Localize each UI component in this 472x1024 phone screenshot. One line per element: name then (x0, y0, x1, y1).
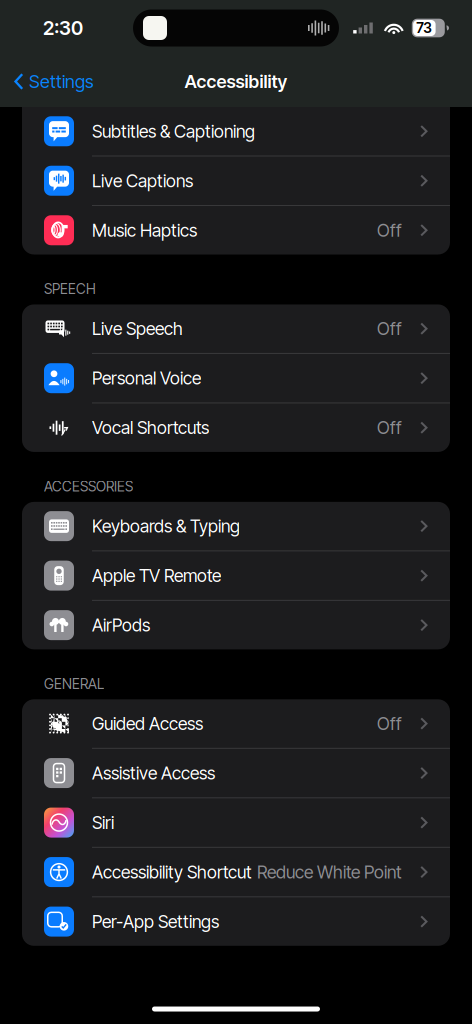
button[interactable]: Subtitles & Captioning (22, 107, 450, 155)
staticText: Music Haptics (92, 220, 197, 241)
staticText: Live Speech (92, 318, 183, 339)
staticText: 2:30 (43, 16, 83, 40)
button[interactable]: Apple TV Remote (22, 551, 450, 600)
button[interactable]: Live Speech (22, 304, 450, 353)
button[interactable]: Assistive Access (22, 749, 450, 797)
staticText: Settings (29, 71, 94, 92)
staticText: Siri (92, 812, 114, 833)
staticText: Assistive Access (92, 762, 215, 784)
staticText: Off (377, 318, 402, 339)
staticText: AirPods (92, 614, 150, 636)
staticText: Vocal Shortcuts (92, 417, 209, 438)
staticText: Personal Voice (92, 367, 201, 389)
button[interactable]: Siri (22, 798, 450, 847)
staticText: Per-App Settings (92, 911, 219, 932)
staticText: Off (377, 417, 402, 438)
staticText: Accessibility Shortcut (92, 861, 252, 883)
staticText: Apple TV Remote (92, 565, 221, 586)
staticText: Guided Access (92, 713, 203, 734)
button[interactable]: Personal Voice (22, 354, 450, 402)
staticText: GENERAL (44, 675, 104, 692)
staticText: Reduce White Point (257, 861, 402, 883)
staticText: Keyboards & Typing (92, 515, 240, 537)
staticText: 73 (416, 19, 432, 36)
button[interactable]: Settings (0, 63, 102, 100)
button[interactable]: Accessibility Shortcut (22, 848, 450, 896)
button[interactable]: Vocal Shortcuts (22, 403, 450, 452)
button[interactable]: Per-App Settings (22, 897, 450, 946)
staticText: ACCESSORIES (44, 478, 133, 495)
staticText: Off (377, 220, 402, 241)
staticText: Accessibility (184, 71, 287, 92)
staticText: Subtitles & Captioning (92, 121, 255, 142)
button[interactable]: Music Haptics (22, 206, 450, 254)
staticText: Live Captions (92, 170, 193, 191)
button[interactable]: Live Captions (22, 156, 450, 205)
button[interactable]: Guided Access (22, 699, 450, 748)
button[interactable]: Keyboards & Typing (22, 502, 450, 550)
staticText: Off (377, 713, 402, 734)
staticText: SPEECH (44, 280, 96, 297)
button[interactable]: AirPods (22, 601, 450, 649)
